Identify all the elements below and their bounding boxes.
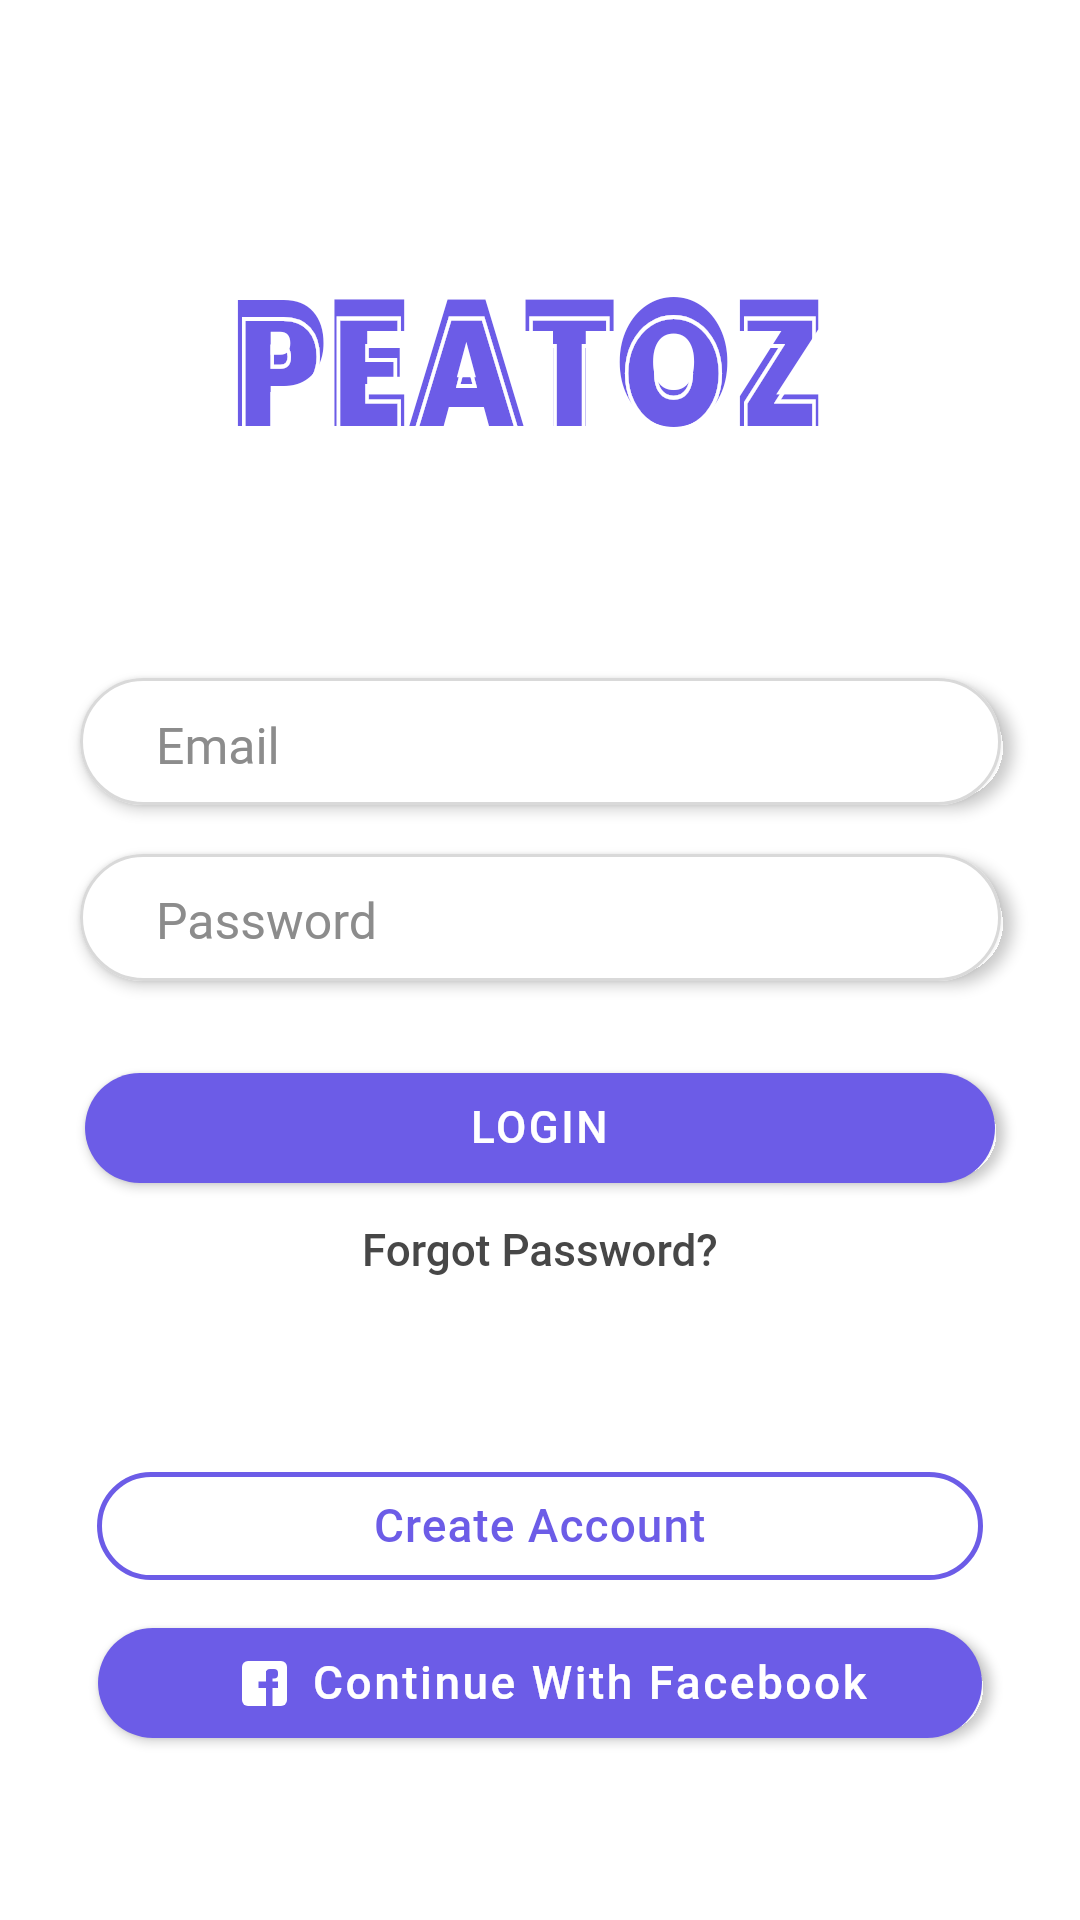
staticText: Z: [732, 239, 826, 488]
staticText: E: [327, 239, 409, 488]
button[interactable]: Create Account: [97, 1472, 983, 1580]
staticText: E: [332, 266, 404, 483]
staticText: LOGIN: [471, 1102, 610, 1154]
staticText: Z: [739, 266, 821, 483]
button[interactable]: Email: [80, 678, 1001, 805]
staticText: A: [409, 239, 524, 488]
staticText: P: [231, 239, 327, 488]
button[interactable]: Continue With Facebook: [98, 1628, 982, 1738]
button[interactable]: Forgot Password?: [362, 1216, 718, 1286]
staticText: Password: [156, 893, 377, 952]
staticText: A: [417, 266, 516, 483]
staticText: Email: [156, 718, 280, 777]
staticText: P: [237, 266, 321, 483]
staticText: T: [530, 266, 609, 483]
button[interactable]: Password: [80, 854, 1001, 981]
staticText: Forgot Password?: [362, 1225, 718, 1277]
button[interactable]: LOGIN: [85, 1073, 995, 1183]
staticText: O: [623, 266, 725, 483]
staticText: Continue With Facebook: [313, 1656, 870, 1710]
staticText: T: [524, 239, 615, 488]
staticText: O: [615, 239, 732, 488]
staticText: Create Account: [374, 1499, 707, 1553]
